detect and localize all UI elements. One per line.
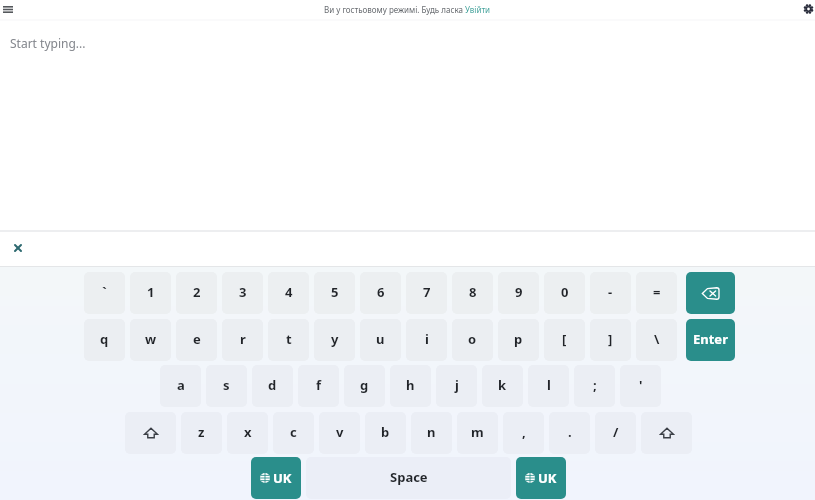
button[interactable]: 2 — [176, 272, 217, 314]
button[interactable]: Shift — [641, 412, 692, 454]
staticText: 4 — [285, 283, 293, 301]
staticText: 6 — [377, 283, 385, 301]
button[interactable]: g — [344, 365, 385, 407]
button[interactable]: - — [590, 272, 631, 314]
staticText: UK — [538, 469, 557, 487]
button[interactable]: a — [160, 365, 201, 407]
staticText: w — [145, 330, 157, 348]
staticText: o — [468, 330, 477, 348]
staticText: g — [360, 376, 369, 394]
button[interactable]: Close — [10, 241, 26, 257]
staticText: Space — [390, 468, 428, 486]
button[interactable]: ; — [574, 365, 615, 407]
button[interactable]: y — [314, 319, 355, 361]
staticText: n — [427, 423, 436, 441]
staticText: e — [193, 330, 201, 348]
staticText: - — [608, 283, 613, 301]
staticText: t — [286, 330, 292, 348]
staticText: 8 — [469, 283, 477, 301]
button[interactable]: 3 — [222, 272, 263, 314]
staticText: p — [514, 330, 523, 348]
button[interactable]: Увійти — [465, 4, 491, 15]
button[interactable]: m — [457, 412, 498, 454]
button[interactable]: z — [181, 412, 222, 454]
button[interactable]: \ — [636, 319, 677, 361]
button[interactable]: o — [452, 319, 493, 361]
button[interactable]: r — [222, 319, 263, 361]
button[interactable]: Space — [306, 457, 511, 499]
staticText: i — [425, 330, 429, 348]
staticText: a — [177, 376, 185, 394]
staticText: h — [406, 376, 415, 394]
button[interactable]: k — [482, 365, 523, 407]
button[interactable]: 5 — [314, 272, 355, 314]
button[interactable]: b — [365, 412, 406, 454]
button[interactable]: 6 — [360, 272, 401, 314]
button[interactable]: v — [319, 412, 360, 454]
button[interactable]: d — [252, 365, 293, 407]
button[interactable]: Shift — [125, 412, 176, 454]
button[interactable]: ' — [620, 365, 661, 407]
button[interactable]: 0 — [544, 272, 585, 314]
staticText: , — [522, 423, 526, 441]
button[interactable]: UK — [251, 457, 301, 499]
staticText: \ — [654, 330, 660, 348]
button[interactable]: l — [528, 365, 569, 407]
button[interactable]: , — [503, 412, 544, 454]
button[interactable]: Menu — [3, 6, 13, 13]
staticText: ] — [608, 330, 613, 348]
button[interactable]: [ — [544, 319, 585, 361]
staticText: 9 — [515, 283, 523, 301]
button[interactable]: e — [176, 319, 217, 361]
button[interactable]: x — [227, 412, 268, 454]
staticText: = — [653, 283, 661, 301]
button[interactable]: s — [206, 365, 247, 407]
button[interactable]: 1 — [130, 272, 171, 314]
staticText: k — [498, 376, 507, 394]
button[interactable]: j — [436, 365, 477, 407]
button[interactable]: 8 — [452, 272, 493, 314]
button[interactable]: w — [130, 319, 171, 361]
staticText: m — [471, 423, 484, 441]
staticText: j — [455, 376, 459, 394]
button[interactable]: = — [636, 272, 677, 314]
button[interactable]: f — [298, 365, 339, 407]
staticText: l — [547, 376, 551, 394]
staticText: / — [613, 423, 619, 441]
staticText: ' — [639, 376, 643, 394]
staticText: Enter — [693, 330, 728, 348]
button[interactable]: UK — [516, 457, 566, 499]
button[interactable]: h — [390, 365, 431, 407]
staticText: r — [240, 330, 246, 348]
staticText: ` — [102, 283, 107, 301]
button[interactable]: q — [84, 319, 125, 361]
button[interactable]: 7 — [406, 272, 447, 314]
staticText: 5 — [331, 283, 339, 301]
staticText: z — [198, 423, 205, 441]
button[interactable]: Backspace — [686, 272, 735, 314]
staticText: x — [244, 423, 252, 441]
staticText: Start typing... — [10, 35, 86, 51]
staticText: 2 — [193, 283, 201, 301]
button[interactable]: Settings — [804, 4, 813, 14]
button[interactable]: c — [273, 412, 314, 454]
staticText: ; — [593, 376, 597, 394]
button[interactable]: u — [360, 319, 401, 361]
button[interactable]: Enter — [686, 319, 735, 361]
staticText: UK — [273, 469, 292, 487]
button[interactable]: p — [498, 319, 539, 361]
staticText: u — [376, 330, 385, 348]
button[interactable]: / — [595, 412, 636, 454]
button[interactable]: n — [411, 412, 452, 454]
staticText: 0 — [561, 283, 569, 301]
button[interactable]: ` — [84, 272, 125, 314]
button[interactable]: i — [406, 319, 447, 361]
button[interactable]: t — [268, 319, 309, 361]
staticText: 1 — [147, 283, 155, 301]
button[interactable]: 9 — [498, 272, 539, 314]
staticText: v — [336, 423, 344, 441]
button[interactable]: ] — [590, 319, 631, 361]
button[interactable]: 4 — [268, 272, 309, 314]
staticText: 3 — [239, 283, 247, 301]
button[interactable]: . — [549, 412, 590, 454]
